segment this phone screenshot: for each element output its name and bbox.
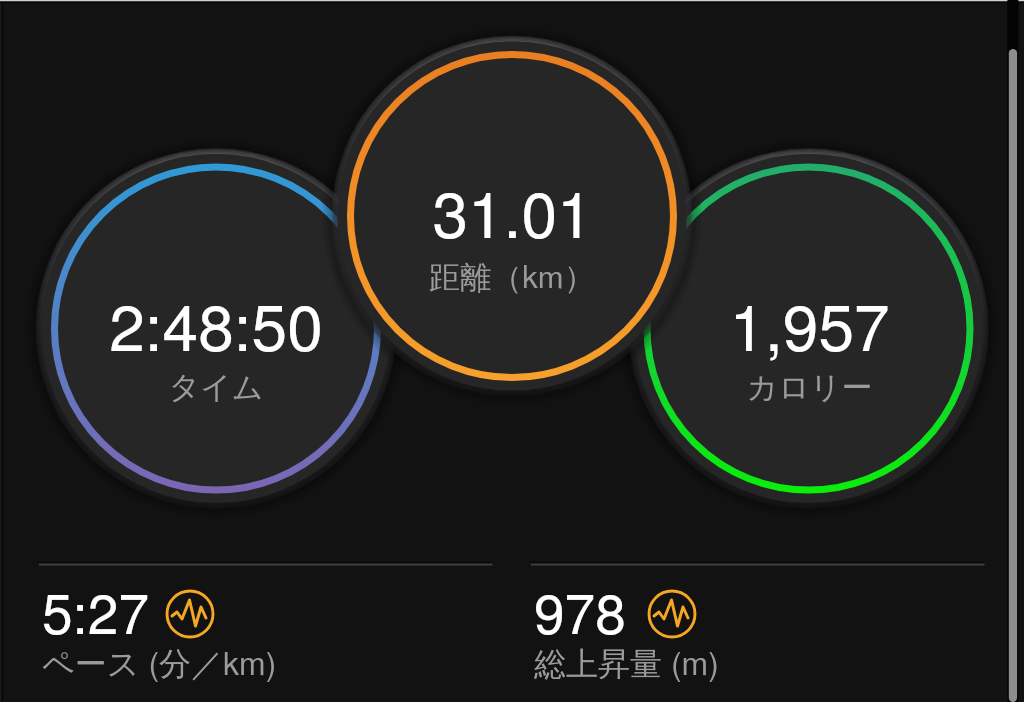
staticText: 978 (534, 571, 626, 650)
staticText: 総上昇量 (m) (534, 638, 719, 684)
button[interactable]: Show 総上昇量 (m) chart (648, 590, 696, 638)
staticText: 31.01 (432, 165, 593, 257)
button[interactable]: カロリー 1,957 (635, 155, 982, 502)
button[interactable]: 距離（km） 31.01 (339, 43, 686, 390)
staticText: タイム (168, 368, 264, 407)
button[interactable]: ペース (分／km) 5:27 (36, 576, 488, 692)
staticText: 距離（km） (429, 252, 595, 297)
staticText: ペース (分／km) (42, 638, 277, 684)
staticText: 1,957 (729, 278, 890, 370)
staticText: 5:27 (42, 571, 150, 650)
staticText: カロリー (746, 368, 873, 407)
staticText: 2:48:50 (109, 278, 323, 370)
button[interactable]: 総上昇量 (m) 978 (528, 576, 980, 692)
button[interactable]: Show ペース (分／km) chart (166, 590, 214, 638)
button[interactable]: タイム 2:48:50 (43, 155, 390, 502)
